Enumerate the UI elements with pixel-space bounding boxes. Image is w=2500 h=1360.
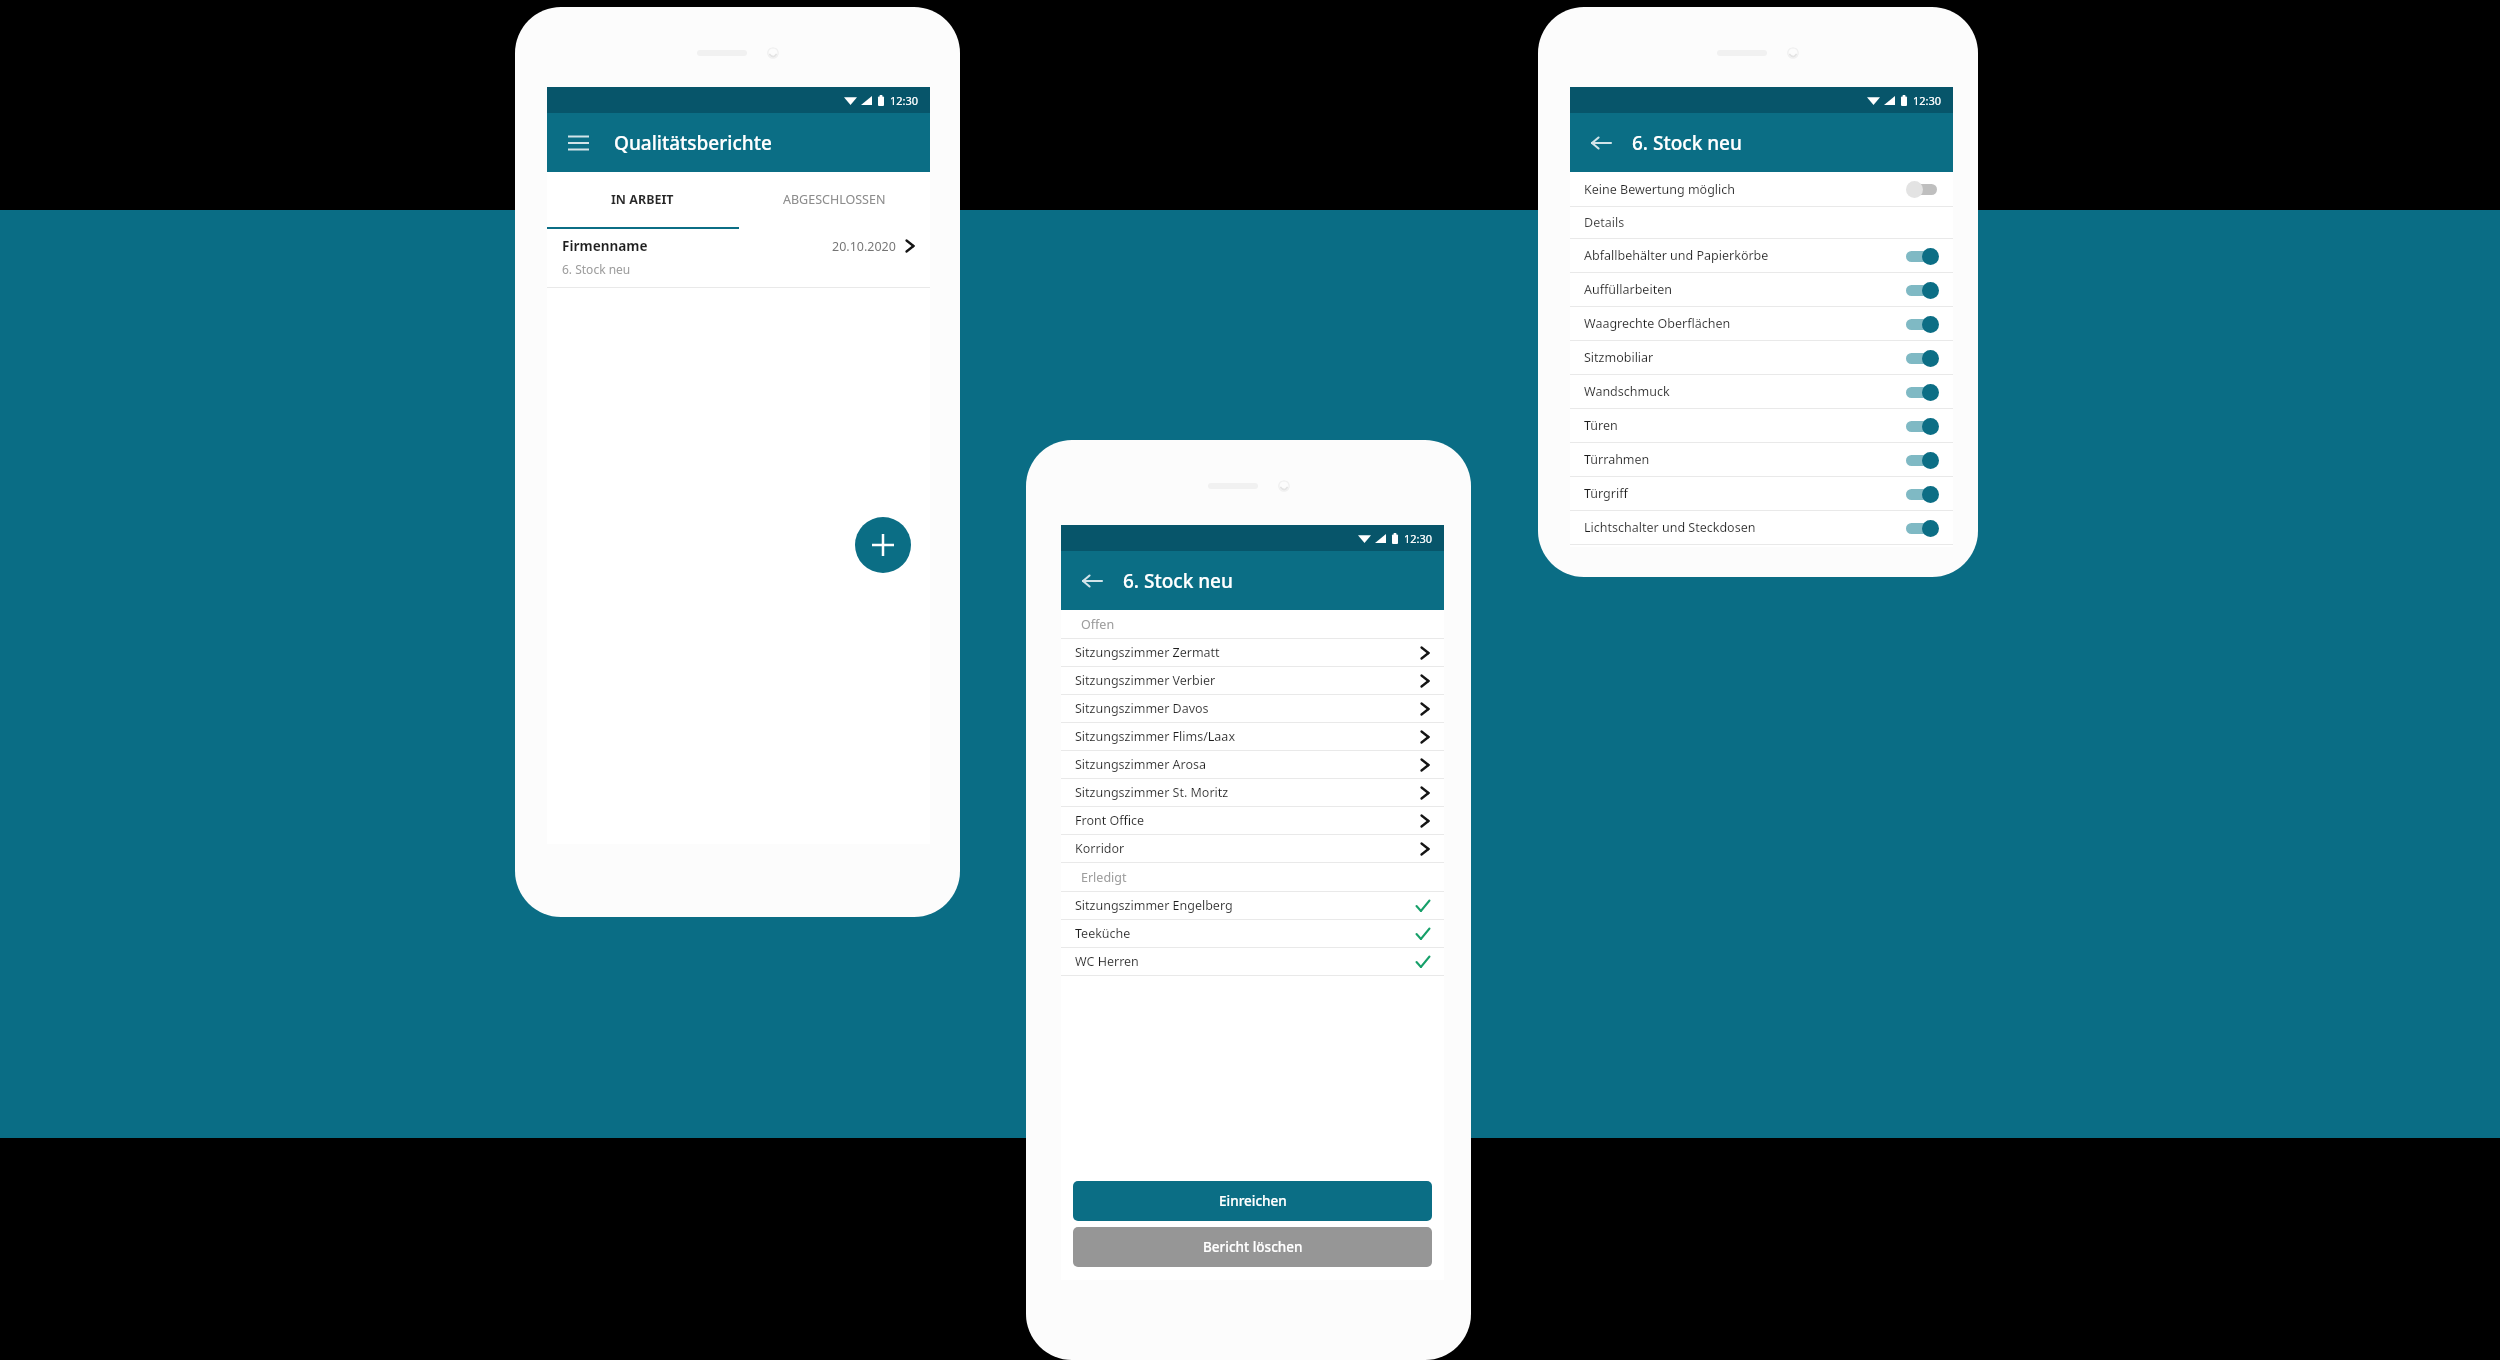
staticText: Bericht löschen <box>1203 1238 1303 1256</box>
staticText: Teeküche <box>1075 925 1131 942</box>
staticText: 12:30 <box>1913 93 1942 108</box>
button[interactable]: Bericht löschen <box>1073 1227 1432 1267</box>
button[interactable]: Türen <box>1570 409 1953 442</box>
button[interactable]: Back <box>1078 567 1106 595</box>
button[interactable]: Korridor <box>1061 835 1444 862</box>
button[interactable]: On <box>1906 383 1939 401</box>
button[interactable]: On <box>1906 485 1939 503</box>
staticText: Korridor <box>1075 840 1125 857</box>
staticText: Offen <box>1081 616 1115 633</box>
staticText: Firmenname <box>562 237 648 255</box>
staticText: IN ARBEIT <box>611 191 674 208</box>
button[interactable]: Sitzungszimmer Engelberg <box>1061 892 1444 919</box>
staticText: Sitzungszimmer Davos <box>1075 700 1209 717</box>
button[interactable]: Sitzungszimmer Zermatt <box>1061 639 1444 666</box>
staticText: Sitzungszimmer Verbier <box>1075 672 1216 689</box>
button[interactable]: Einreichen <box>1073 1181 1432 1221</box>
button[interactable]: ABGESCHLOSSEN <box>738 172 930 227</box>
staticText: Einreichen <box>1219 1192 1287 1210</box>
button[interactable]: Sitzungszimmer Arosa <box>1061 751 1444 778</box>
button[interactable]: Waagrechte Oberflächen <box>1570 307 1953 340</box>
button[interactable]: Sitzmobiliar <box>1570 341 1953 374</box>
button[interactable]: Sitzungszimmer Flims/Laax <box>1061 723 1444 750</box>
staticText: ABGESCHLOSSEN <box>783 191 886 208</box>
button[interactable]: Back <box>1587 129 1615 157</box>
button[interactable]: Türgriff <box>1570 477 1953 510</box>
button[interactable]: Sitzungszimmer Davos <box>1061 695 1444 722</box>
staticText: Türen <box>1584 417 1618 434</box>
button[interactable]: Keine Bewertung möglich <box>1570 172 1953 206</box>
staticText: 6. Stock neu <box>562 261 631 277</box>
button[interactable]: Abfallbehälter und Papierkörbe <box>1570 239 1953 272</box>
staticText: Details <box>1584 214 1625 231</box>
button[interactable]: On <box>1906 281 1939 299</box>
button[interactable]: Sitzungszimmer Verbier <box>1061 667 1444 694</box>
button[interactable]: On <box>1906 349 1939 367</box>
staticText: Sitzungszimmer Zermatt <box>1075 644 1220 661</box>
button[interactable]: Wandschmuck <box>1570 375 1953 408</box>
staticText: Sitzungszimmer St. Moritz <box>1075 784 1229 801</box>
staticText: Front Office <box>1075 812 1145 829</box>
staticText: Abfallbehälter und Papierkörbe <box>1584 247 1769 264</box>
staticText: Türrahmen <box>1584 451 1650 468</box>
staticText: Sitzungszimmer Flims/Laax <box>1075 728 1235 745</box>
button[interactable]: IN ARBEIT <box>547 172 738 227</box>
button[interactable]: On <box>1906 247 1939 265</box>
staticText: Erledigt <box>1081 869 1127 886</box>
staticText: Wandschmuck <box>1584 383 1670 400</box>
button[interactable]: Türrahmen <box>1570 443 1953 476</box>
button[interactable]: Front Office <box>1061 807 1444 834</box>
staticText: 12:30 <box>890 93 919 108</box>
staticText: 12:30 <box>1404 531 1433 546</box>
button[interactable]: On <box>1906 417 1939 435</box>
staticText: 6. Stock neu <box>1123 568 1233 594</box>
staticText: 20.10.2020 <box>832 238 896 255</box>
button[interactable]: Menu <box>564 129 592 157</box>
button[interactable]: Lichtschalter und Steckdosen <box>1570 511 1953 544</box>
button[interactable]: Off <box>1906 180 1939 198</box>
button[interactable]: On <box>1906 451 1939 469</box>
button[interactable]: Firmenname <box>547 229 930 287</box>
staticText: WC Herren <box>1075 953 1139 970</box>
button[interactable]: On <box>1906 519 1939 537</box>
staticText: Sitzungszimmer Arosa <box>1075 756 1207 773</box>
staticText: Sitzungszimmer Engelberg <box>1075 897 1233 914</box>
staticText: 6. Stock neu <box>1632 130 1742 156</box>
staticText: Waagrechte Oberflächen <box>1584 315 1731 332</box>
staticText: Lichtschalter und Steckdosen <box>1584 519 1756 536</box>
button[interactable]: Teeküche <box>1061 920 1444 947</box>
staticText: Qualitätsberichte <box>614 130 772 156</box>
staticText: Keine Bewertung möglich <box>1584 181 1736 198</box>
button[interactable]: On <box>1906 315 1939 333</box>
staticText: Sitzmobiliar <box>1584 349 1654 366</box>
button[interactable]: Add report <box>855 517 911 573</box>
button[interactable]: Auffüllarbeiten <box>1570 273 1953 306</box>
button[interactable]: Sitzungszimmer St. Moritz <box>1061 779 1444 806</box>
staticText: Türgriff <box>1584 485 1628 502</box>
button[interactable]: WC Herren <box>1061 948 1444 975</box>
staticText: Auffüllarbeiten <box>1584 281 1672 298</box>
